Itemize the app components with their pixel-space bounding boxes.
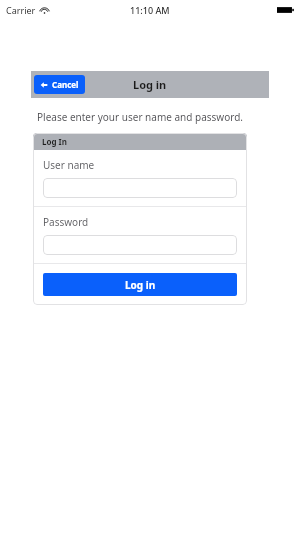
button[interactable]: Back	[34, 75, 85, 94]
staticText: Please enter your user name and password…	[37, 110, 244, 124]
staticText: Cancel	[52, 79, 79, 90]
staticText: User name	[43, 158, 95, 172]
staticText: Password	[43, 215, 89, 229]
staticText: Log in	[133, 77, 167, 92]
staticText: Log in	[125, 278, 156, 292]
other: Back	[40, 81, 48, 89]
button[interactable]: Log in	[43, 273, 237, 296]
staticText: Log In	[42, 136, 67, 147]
button[interactable]	[43, 235, 237, 255]
button[interactable]	[43, 178, 237, 198]
staticText: 11:10 AM	[130, 4, 170, 16]
staticText: Carrier	[6, 4, 36, 16]
